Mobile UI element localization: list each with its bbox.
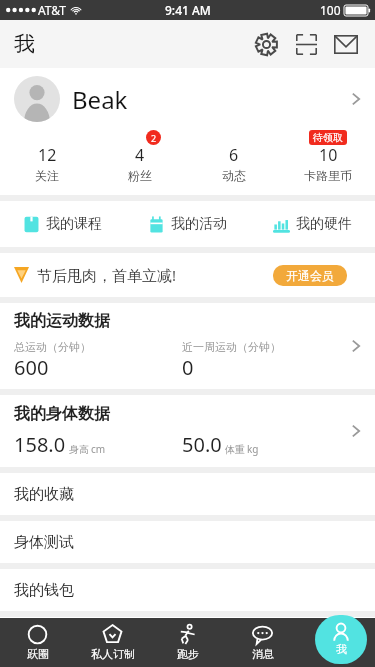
staticText: 我的活动	[171, 215, 227, 233]
button[interactable]: 我的身体数据	[0, 395, 375, 467]
button[interactable]: 我的活动	[125, 201, 250, 247]
button[interactable]: 我的硬件	[250, 201, 375, 247]
button[interactable]: 我	[315, 615, 367, 664]
staticText: 10	[319, 144, 338, 166]
staticText: 我的身体数据	[14, 404, 110, 424]
staticText: 我的硬件	[296, 215, 352, 233]
staticText: 动态	[222, 168, 246, 183]
staticText: 600	[14, 354, 49, 381]
staticText: 我的钱包	[14, 581, 74, 600]
button[interactable]: 6	[187, 130, 281, 183]
button[interactable]: 我的钱包	[0, 569, 375, 611]
button[interactable]: Messages	[329, 27, 363, 61]
staticText: 12	[38, 144, 57, 166]
button[interactable]: 消息	[225, 618, 300, 667]
button[interactable]: 4	[93, 130, 187, 183]
button[interactable]: 10	[281, 130, 375, 183]
staticText: 9:41 AM	[165, 2, 211, 18]
staticText: AT&T	[38, 2, 66, 18]
button[interactable]: 跑步	[150, 618, 225, 667]
staticText: 私人订制	[91, 647, 135, 661]
staticText: 身体测试	[14, 533, 74, 552]
button[interactable]: 我的课程	[0, 201, 125, 247]
button[interactable]: Scan QR code	[289, 27, 323, 61]
staticText: 开通会员	[286, 268, 334, 283]
staticText: 2	[151, 132, 157, 144]
staticText: 我	[336, 642, 347, 656]
staticText: kg	[247, 442, 259, 456]
staticText: 身高	[69, 443, 89, 456]
staticText: 50.0	[182, 431, 222, 458]
staticText: 待领取	[313, 131, 343, 144]
staticText: 6	[229, 144, 239, 166]
staticText: 体重	[225, 443, 245, 456]
button[interactable]: 12	[0, 130, 93, 183]
button[interactable]: 我的收藏	[0, 473, 375, 515]
button[interactable]: 节后甩肉，首单立减!	[0, 253, 375, 297]
staticText: 粉丝	[128, 168, 152, 183]
staticText: 我的课程	[46, 215, 102, 233]
button[interactable]: Beak	[0, 68, 375, 130]
button[interactable]: 我的运动数据	[0, 303, 375, 389]
button[interactable]: 私人订制	[75, 618, 150, 667]
staticText: 我的运动数据	[14, 311, 110, 331]
staticText: 100	[320, 2, 341, 18]
staticText: 近一周运动（分钟）	[182, 340, 281, 354]
staticText: 158.0	[14, 431, 66, 458]
staticText: 我	[14, 31, 35, 57]
button[interactable]: 身体测试	[0, 521, 375, 563]
staticText: 我的收藏	[14, 485, 74, 504]
staticText: 消息	[252, 647, 274, 661]
staticText: 4	[135, 144, 145, 166]
button[interactable]: Settings	[249, 27, 283, 61]
button[interactable]: 跃圈	[0, 618, 75, 667]
staticText: 总运动（分钟）	[14, 340, 91, 354]
staticText: 关注	[35, 168, 59, 183]
staticText: 卡路里币	[304, 168, 352, 183]
staticText: 0	[182, 354, 194, 381]
staticText: 跑步	[177, 647, 199, 661]
staticText: cm	[91, 442, 106, 456]
staticText: 节后甩肉，首单立减!	[37, 265, 177, 285]
staticText: 跃圈	[27, 647, 49, 661]
button[interactable]: 我的订单	[0, 617, 375, 618]
staticText: Beak	[72, 83, 128, 116]
button[interactable]: 开通会员	[273, 265, 347, 286]
